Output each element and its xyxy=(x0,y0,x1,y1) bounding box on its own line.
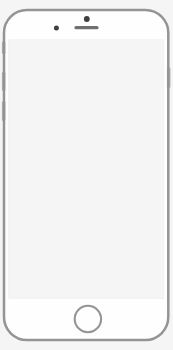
button[interactable]: Home xyxy=(75,305,101,331)
